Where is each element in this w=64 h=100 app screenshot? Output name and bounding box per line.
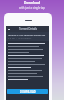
button[interactable]: ubuntu-21.04-desktop-amd64.iso <box>6 32 49 41</box>
button[interactable]: DOWNLOAD <box>7 89 48 94</box>
staticText: DOWNLOAD <box>20 90 36 94</box>
button[interactable]: Back <box>7 28 10 31</box>
staticText: with just a single tap <box>19 6 45 10</box>
staticText: Torrent Details <box>19 27 37 31</box>
staticText: 2.8 GB • 1240 seeders <box>8 37 32 40</box>
staticText: Download <box>24 1 40 5</box>
staticText: ubuntu-21.04-desktop-amd64.iso <box>8 33 46 36</box>
